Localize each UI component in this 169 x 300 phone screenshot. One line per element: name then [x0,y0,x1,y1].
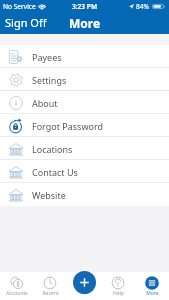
staticText: Locations [32,143,73,155]
button[interactable]: Accounts [0,272,33,300]
button[interactable]: Payees [0,45,169,68]
staticText: Website [32,189,66,201]
button[interactable]: Locations [0,137,169,160]
staticText: Help [113,290,124,297]
button[interactable]: Contact Us [0,160,169,183]
staticText: Settings [32,74,67,86]
staticText: Recent [42,290,59,297]
staticText: Accounts [6,290,28,297]
staticText: Forgot Password [32,120,104,132]
staticText: Payees [32,51,62,63]
staticText: More [69,15,101,31]
button[interactable]: Settings [0,68,169,91]
staticText: 3:23 PM [72,2,98,11]
button[interactable]: Add [73,271,96,294]
button[interactable]: Website [0,183,169,206]
button[interactable]: Help [101,272,135,300]
staticText: 84% [136,2,150,11]
staticText: Sign Off [5,15,47,30]
button[interactable]: Sign Off [4,14,48,31]
button[interactable]: Recent [33,272,67,300]
staticText: About [32,97,58,109]
button[interactable]: Forgot Password [0,114,169,137]
staticText: No Service [3,2,36,11]
button[interactable]: About [0,91,169,114]
button[interactable]: More [135,272,169,300]
staticText: Contact Us [32,166,78,178]
staticText: More [146,290,159,297]
